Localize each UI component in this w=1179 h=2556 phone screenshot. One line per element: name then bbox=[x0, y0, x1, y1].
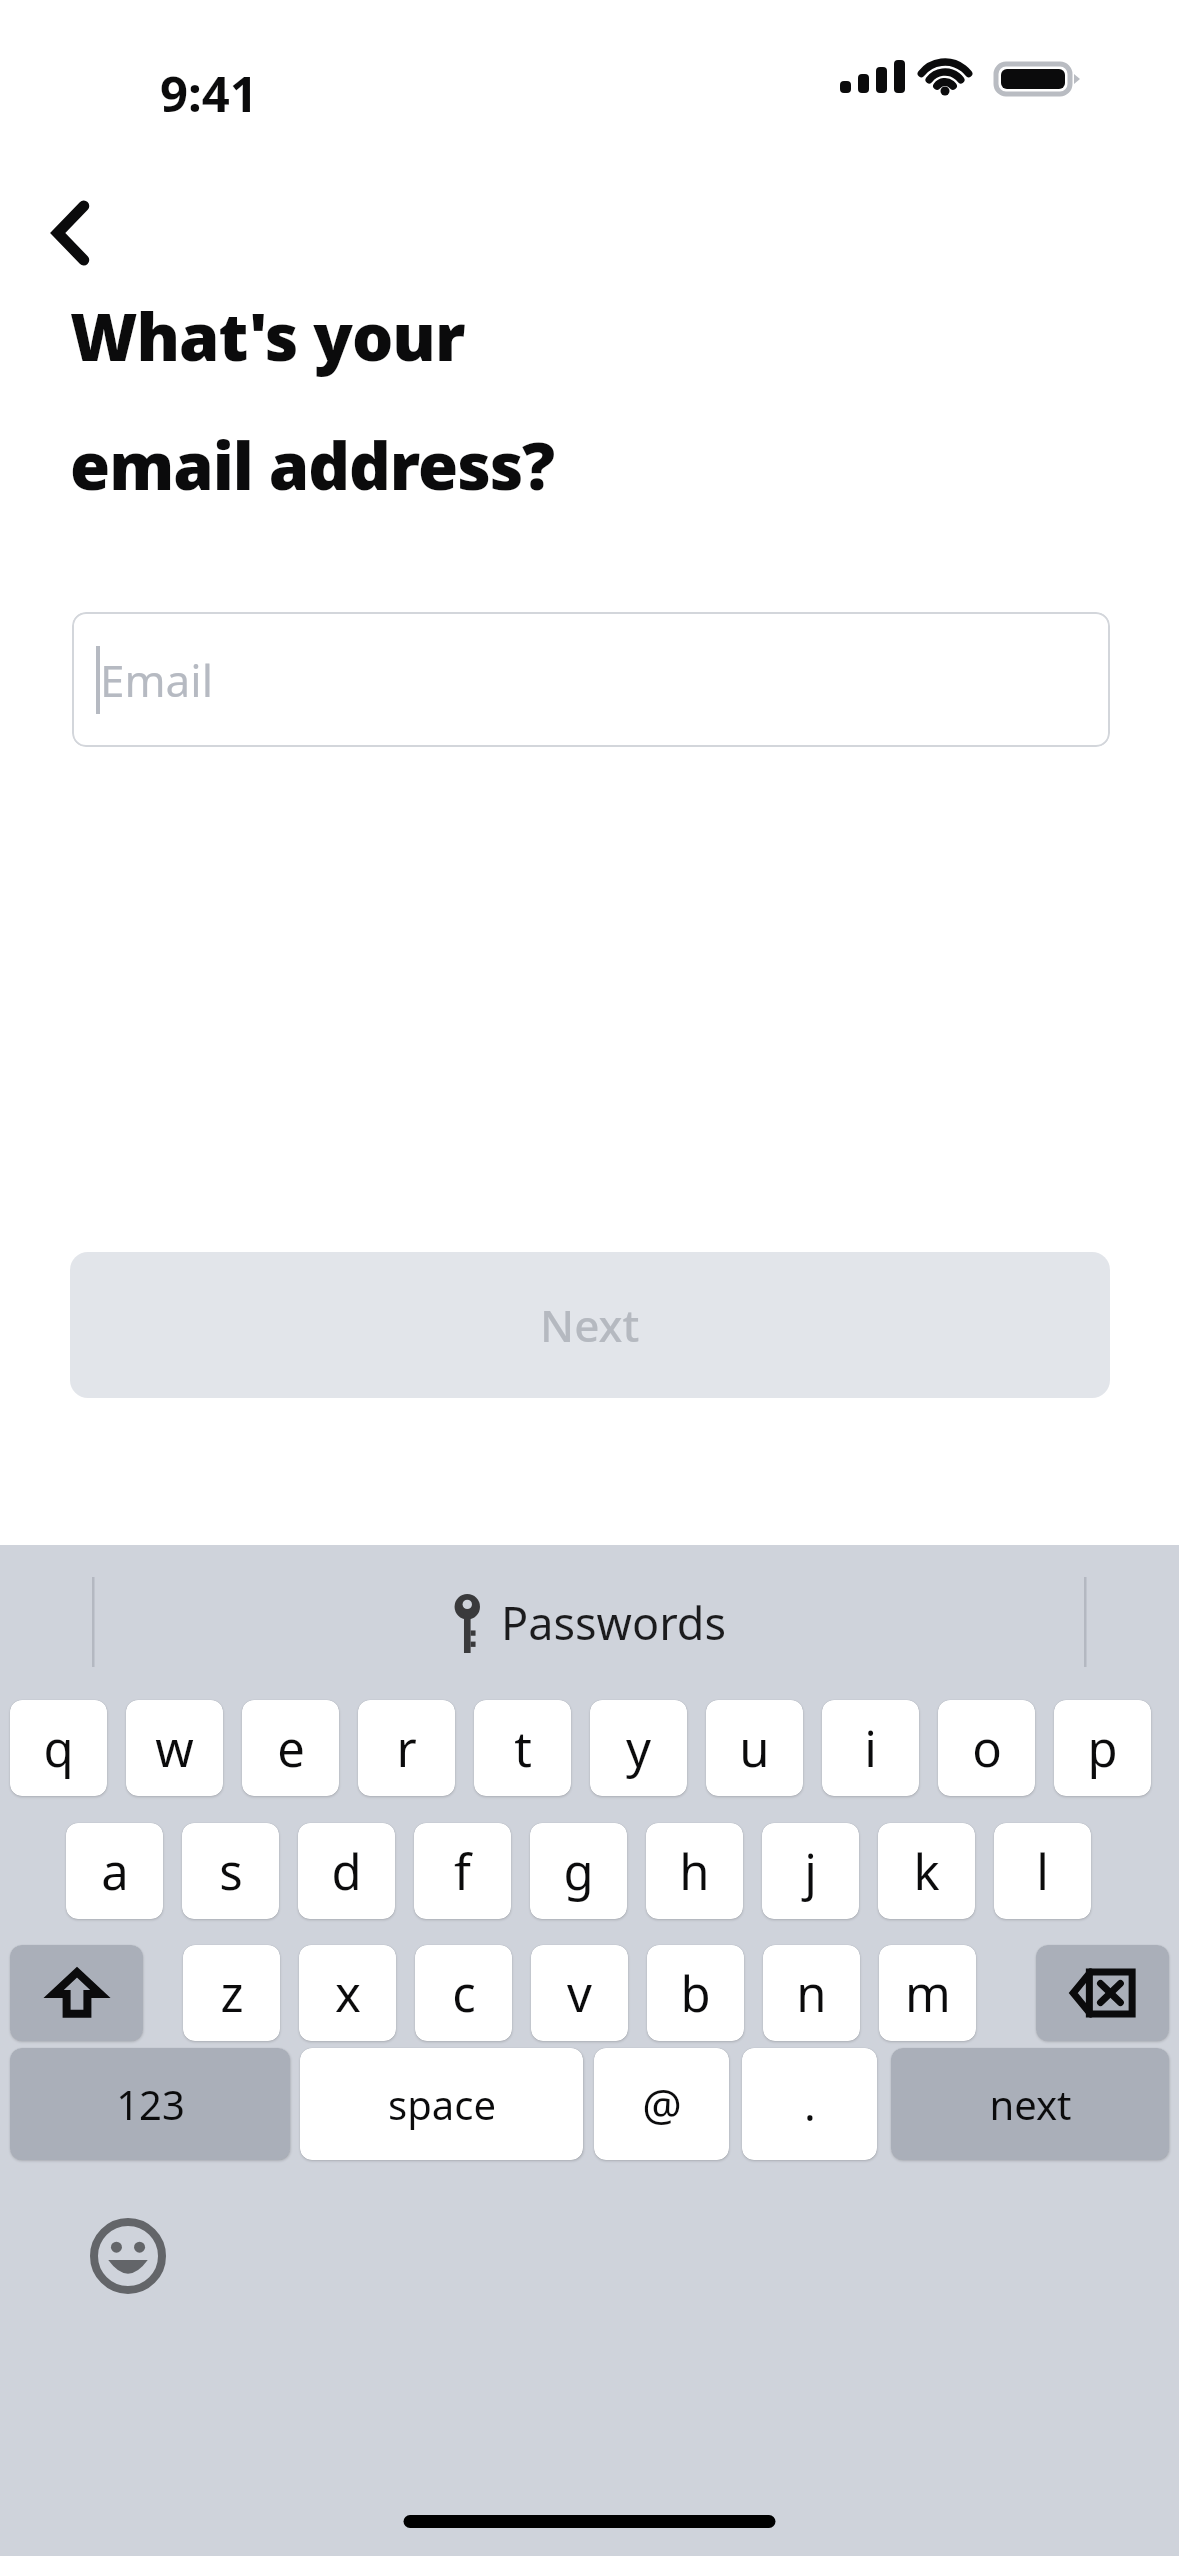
staticText: u bbox=[739, 1715, 770, 1782]
button[interactable]: w bbox=[126, 1700, 223, 1796]
staticText: b bbox=[680, 1960, 711, 2027]
button[interactable]: next bbox=[891, 2048, 1169, 2160]
staticText: x bbox=[335, 1960, 361, 2027]
button[interactable]: space bbox=[300, 2048, 583, 2160]
button[interactable]: k bbox=[878, 1823, 975, 1919]
staticText: e bbox=[277, 1715, 305, 1782]
staticText: q bbox=[43, 1715, 74, 1782]
staticText: g bbox=[563, 1838, 594, 1905]
button[interactable]: @ bbox=[594, 2048, 729, 2160]
staticText: space bbox=[388, 2077, 496, 2131]
button[interactable]: f bbox=[414, 1823, 511, 1919]
staticText: Next bbox=[540, 1295, 640, 1355]
staticText: j bbox=[804, 1838, 817, 1905]
button[interactable]: n bbox=[763, 1945, 860, 2041]
staticText: y bbox=[626, 1715, 651, 1782]
button[interactable]: Next bbox=[70, 1252, 1110, 1398]
button[interactable]: b bbox=[647, 1945, 744, 2041]
button[interactable]: l bbox=[994, 1823, 1091, 1919]
button[interactable]: v bbox=[531, 1945, 628, 2041]
staticText: Email bbox=[100, 650, 213, 710]
staticText: k bbox=[913, 1838, 940, 1905]
staticText: Passwords bbox=[501, 1592, 727, 1653]
button[interactable]: Backspace bbox=[1036, 1945, 1169, 2041]
staticText: a bbox=[101, 1838, 129, 1905]
button[interactable]: d bbox=[298, 1823, 395, 1919]
staticText: i bbox=[864, 1715, 877, 1782]
button[interactable]: j bbox=[762, 1823, 859, 1919]
button[interactable]: Email bbox=[72, 612, 1110, 747]
staticText: l bbox=[1036, 1838, 1049, 1905]
staticText: 9:41 bbox=[160, 60, 258, 127]
button[interactable]: o bbox=[938, 1700, 1035, 1796]
button[interactable]: s bbox=[182, 1823, 279, 1919]
button[interactable]: m bbox=[879, 1945, 976, 2041]
button[interactable]: r bbox=[358, 1700, 455, 1796]
button[interactable]: q bbox=[10, 1700, 107, 1796]
button[interactable]: a bbox=[66, 1823, 163, 1919]
staticText: r bbox=[396, 1715, 417, 1782]
button[interactable]: 123 bbox=[10, 2048, 290, 2160]
button[interactable]: Shift bbox=[10, 1945, 143, 2041]
button[interactable]: Back bbox=[24, 185, 120, 281]
button[interactable]: z bbox=[183, 1945, 280, 2041]
button[interactable]: Passwords bbox=[0, 1545, 1179, 1700]
staticText: f bbox=[454, 1838, 471, 1905]
button[interactable]: g bbox=[530, 1823, 627, 1919]
staticText: d bbox=[331, 1838, 362, 1905]
staticText: . bbox=[804, 2074, 816, 2134]
staticText: next bbox=[989, 2077, 1072, 2131]
button[interactable]: u bbox=[706, 1700, 803, 1796]
staticText: v bbox=[567, 1960, 592, 2027]
staticText: p bbox=[1087, 1715, 1118, 1782]
button[interactable]: i bbox=[822, 1700, 919, 1796]
staticText: What's your bbox=[70, 292, 465, 381]
staticText: email address? bbox=[70, 421, 555, 510]
staticText: h bbox=[679, 1838, 710, 1905]
staticText: n bbox=[796, 1960, 827, 2027]
staticText: z bbox=[220, 1960, 244, 2027]
staticText: c bbox=[452, 1960, 476, 2027]
staticText: @ bbox=[642, 2074, 682, 2134]
staticText: t bbox=[514, 1715, 532, 1782]
button[interactable]: h bbox=[646, 1823, 743, 1919]
staticText: 123 bbox=[116, 2077, 185, 2131]
staticText: m bbox=[905, 1960, 951, 2027]
button[interactable]: p bbox=[1054, 1700, 1151, 1796]
button[interactable]: x bbox=[299, 1945, 396, 2041]
button[interactable]: c bbox=[415, 1945, 512, 2041]
staticText: o bbox=[972, 1715, 1002, 1782]
button[interactable]: Emoji keyboard bbox=[72, 2200, 184, 2312]
button[interactable]: y bbox=[590, 1700, 687, 1796]
staticText: w bbox=[155, 1715, 194, 1782]
staticText: s bbox=[219, 1838, 243, 1905]
button[interactable]: . bbox=[742, 2048, 877, 2160]
button[interactable]: e bbox=[242, 1700, 339, 1796]
button[interactable]: t bbox=[474, 1700, 571, 1796]
